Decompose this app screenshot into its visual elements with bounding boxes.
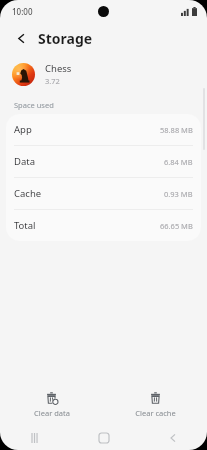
staticText: Space used	[14, 100, 54, 110]
staticText: 66.65 MB	[160, 221, 193, 231]
staticText: App	[14, 123, 32, 136]
button[interactable]: Clear data	[0, 388, 103, 422]
button[interactable]: Cache	[6, 178, 201, 210]
staticText: Chess	[45, 62, 72, 75]
button[interactable]: App	[6, 114, 201, 146]
button[interactable]: Chess	[0, 54, 207, 94]
staticText: 0.93 MB	[164, 189, 193, 199]
staticText: Clear cache	[135, 408, 176, 418]
button[interactable]: Clear cache	[103, 388, 207, 422]
staticText: 3.72	[45, 76, 60, 86]
staticText: 10:00	[12, 6, 33, 17]
button[interactable]: Data	[6, 146, 201, 178]
staticText: Cache	[14, 187, 42, 200]
button[interactable]: Recents	[0, 426, 69, 450]
staticText: Total	[14, 219, 36, 232]
staticText: Clear data	[34, 408, 70, 418]
staticText: 58.88 MB	[160, 125, 193, 135]
staticText: 6.84 MB	[164, 157, 193, 167]
staticText: Storage	[38, 29, 93, 48]
button[interactable]: Back	[10, 27, 32, 49]
button[interactable]: Home	[69, 426, 138, 450]
staticText: Data	[14, 155, 36, 168]
button[interactable]: Total	[6, 210, 201, 241]
button[interactable]: Back	[138, 426, 207, 450]
